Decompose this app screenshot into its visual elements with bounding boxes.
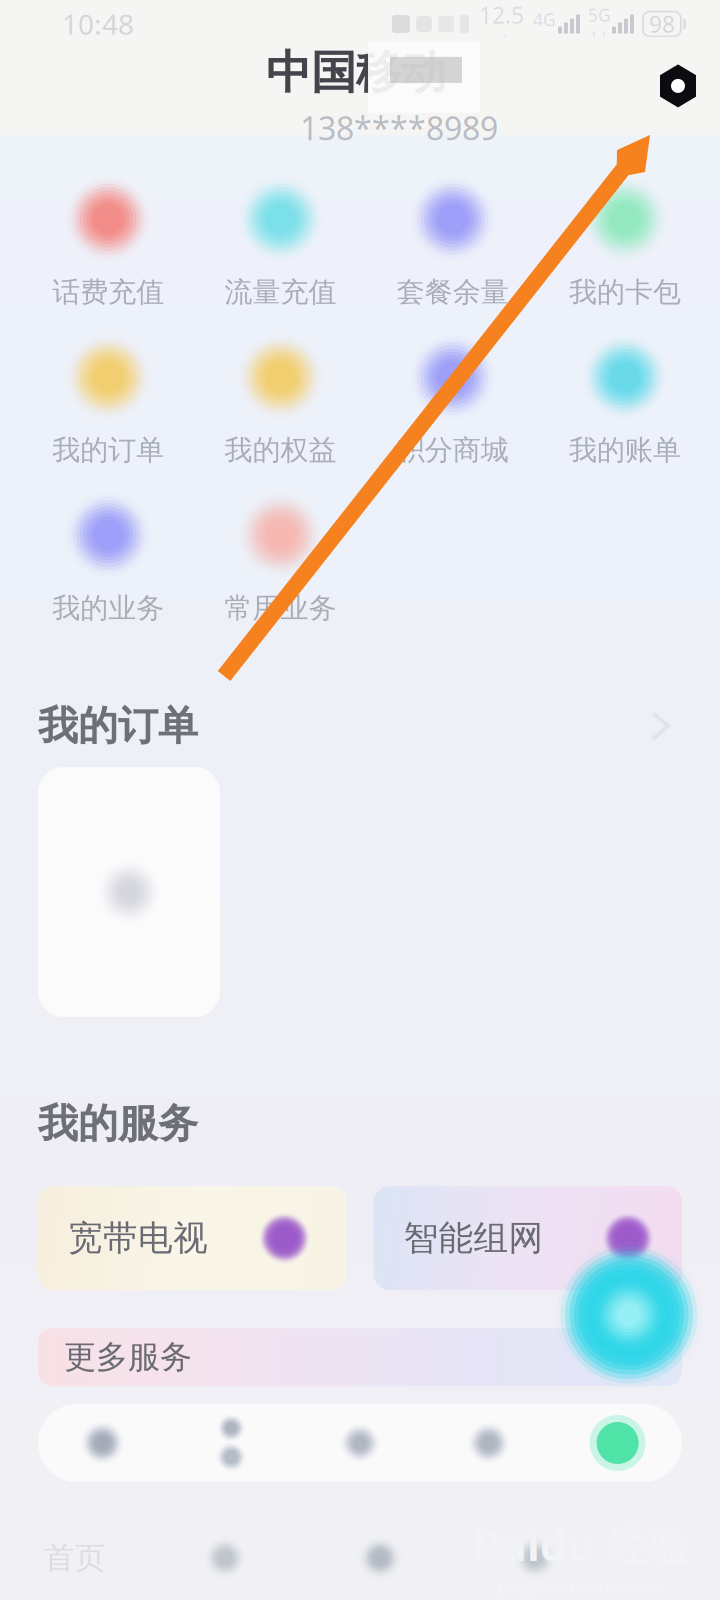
staticText: 流量充值 — [224, 275, 336, 309]
button[interactable]: 首页 — [0, 1539, 150, 1577]
staticText: 宽带电视 — [68, 1217, 208, 1259]
button[interactable]: 流量充值 — [194, 173, 366, 331]
staticText: 我的订单 — [38, 701, 198, 750]
staticText: 更多服务 — [64, 1337, 192, 1377]
button[interactable]: More orders — [639, 699, 682, 753]
staticText: 我的服务 — [38, 1099, 198, 1148]
staticText: 10:48 — [62, 5, 134, 43]
button[interactable]: 我的卡包 — [539, 173, 711, 331]
staticText: 1↓ — [590, 27, 609, 44]
button[interactable]: Me — [553, 1415, 682, 1471]
staticText: 我的卡包 — [569, 275, 681, 309]
button[interactable]: 常用业务 — [194, 489, 366, 647]
button[interactable]: Orders — [296, 1420, 424, 1466]
button[interactable]: Profile — [460, 1535, 610, 1581]
button[interactable]: 我的订单 — [22, 331, 194, 489]
button[interactable]: 我的权益 — [194, 331, 366, 489]
button[interactable]: 智能组网 — [373, 1186, 682, 1290]
staticText: 中国移动 — [266, 45, 446, 101]
button[interactable]: 套餐余量 — [366, 173, 539, 331]
staticText: 首页 — [44, 1539, 106, 1577]
staticText: Baidu 经验 — [473, 1516, 692, 1573]
button[interactable]: Search — [167, 1420, 296, 1466]
staticText: 话费充值 — [52, 275, 164, 309]
staticText: 智能组网 — [403, 1217, 543, 1259]
button[interactable]: Home — [38, 1420, 167, 1466]
button[interactable]: Discover — [150, 1535, 300, 1581]
button[interactable]: 我的业务 — [22, 489, 194, 647]
button[interactable]: 我的账单 — [539, 331, 711, 489]
staticText: 套餐余量 — [397, 275, 509, 309]
staticText: 5G — [588, 4, 611, 27]
button[interactable]: Assistant — [556, 1242, 702, 1388]
staticText: 常用业务 — [224, 591, 336, 625]
button[interactable]: Orders — [38, 767, 220, 1017]
button[interactable]: 更多服务 — [38, 1328, 682, 1386]
staticText: 我的订单 — [52, 433, 164, 467]
button[interactable]: Messages — [424, 1420, 553, 1466]
staticText: 我的权益 — [224, 433, 336, 467]
button[interactable]: 话费充值 — [22, 173, 194, 331]
staticText: 我的业务 — [52, 591, 164, 625]
staticText: 12.5 — [479, 0, 524, 30]
staticText: 98 — [649, 9, 675, 39]
staticText: 4G — [533, 8, 556, 31]
staticText: 我的账单 — [569, 433, 681, 467]
staticText: 138****8989 — [300, 107, 498, 149]
button[interactable]: Scan — [652, 58, 704, 114]
button[interactable]: 宽带电视 — [38, 1186, 346, 1290]
staticText: 积分商城 — [397, 433, 509, 467]
button[interactable]: 积分商城 — [366, 331, 539, 489]
button[interactable]: Services — [300, 1535, 460, 1581]
